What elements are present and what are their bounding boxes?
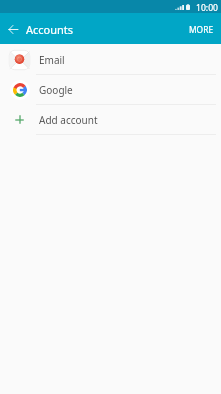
button[interactable]: Google <box>0 75 221 104</box>
staticText: MORE <box>189 24 214 35</box>
button[interactable]: Add account <box>0 105 221 134</box>
staticText: Add account <box>39 113 98 127</box>
button[interactable]: Email <box>0 45 221 74</box>
staticText: Accounts <box>26 22 74 37</box>
staticText: Email <box>39 53 65 67</box>
staticText: Google <box>39 83 73 97</box>
button[interactable]: Back <box>0 13 26 44</box>
button[interactable]: MORE <box>182 13 221 44</box>
staticText: 10:00 <box>196 2 218 14</box>
